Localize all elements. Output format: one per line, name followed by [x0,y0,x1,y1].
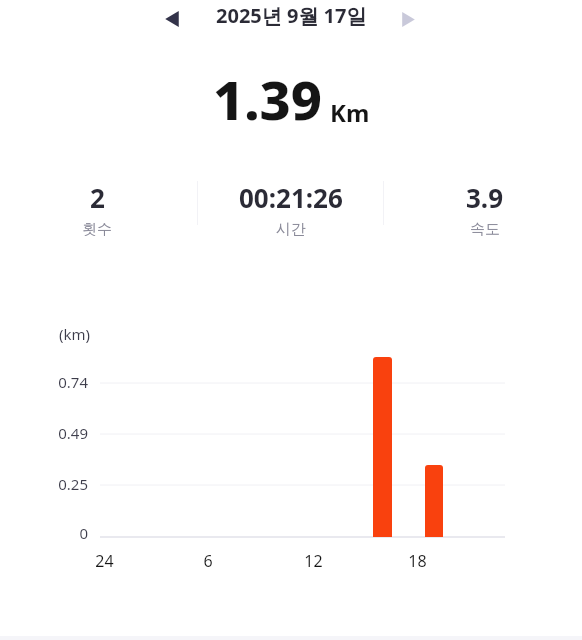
staticText: 18 [408,550,427,572]
button[interactable]: 1.39 [0,62,582,136]
staticText: 횟수 [82,220,112,236]
staticText: 0.74 [58,372,88,392]
staticText: 0.25 [58,474,88,494]
staticText: 3.9 [466,180,504,215]
button[interactable]: Previous day [157,4,187,34]
staticText: 12 [304,550,323,572]
button[interactable]: 3.9 [388,176,582,236]
staticText: (km) [59,324,91,344]
staticText: 00:21:26 [239,180,343,215]
staticText: 2 [90,180,105,215]
staticText: 2025년 9월 17일 [216,2,367,29]
staticText: 6 [203,550,213,572]
staticText: 0 [79,523,88,543]
button[interactable]: Next day [393,4,423,34]
button[interactable]: 2 [0,176,194,236]
staticText: 속도 [470,220,500,236]
button[interactable]: 2025년 9월 17일 [0,2,582,29]
staticText: 24 [95,550,114,572]
staticText: 시간 [276,220,306,236]
button[interactable]: 00:21:26 [194,176,388,236]
staticText: 1.39 [213,62,323,136]
staticText: 0.49 [58,423,88,443]
staticText: Km [330,96,370,129]
